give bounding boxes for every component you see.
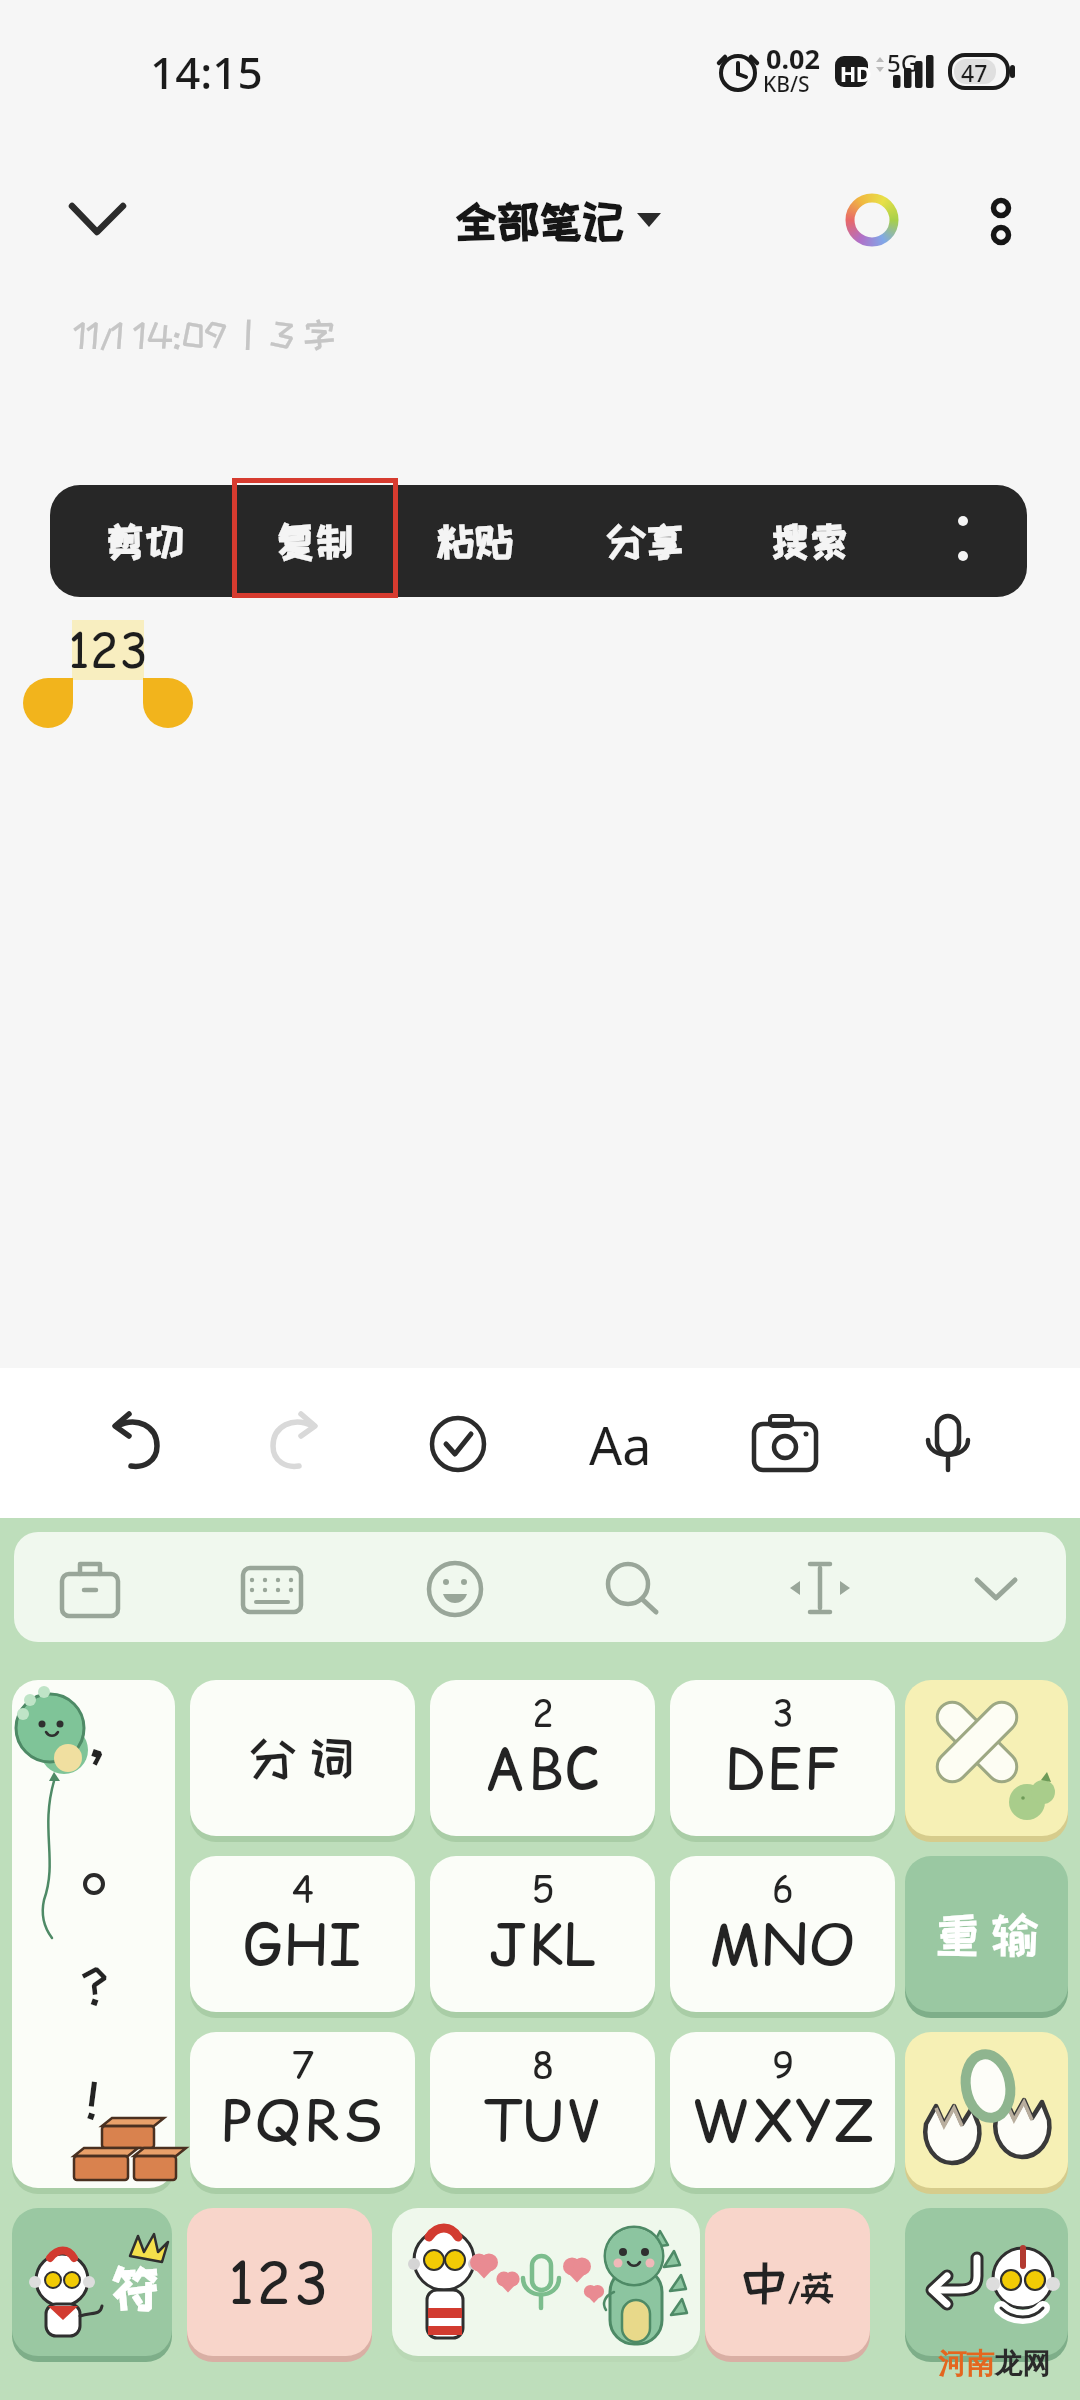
staticText: KB/S: [763, 70, 810, 99]
staticText: 分享: [607, 520, 685, 562]
staticText: 3: [772, 1688, 794, 1738]
staticText: ABC: [484, 1728, 601, 1809]
staticText: 2: [532, 1688, 554, 1738]
staticText: 中/英: [740, 2256, 835, 2308]
staticText: 复制: [276, 520, 354, 562]
staticText: 123: [68, 616, 149, 683]
staticText: 分 词: [250, 1733, 355, 1783]
staticText: 11/1 14:09 | 3 字: [74, 316, 336, 352]
staticText: 8: [532, 2040, 554, 2090]
staticText: 6: [772, 1864, 794, 1914]
staticText: Aa: [589, 1409, 652, 1480]
staticText: DEF: [724, 1728, 841, 1809]
staticText: 搜索: [771, 520, 849, 562]
staticText: JKL: [488, 1904, 597, 1985]
staticText: 全部笔记: [455, 198, 625, 244]
staticText: 47: [961, 57, 988, 88]
staticText: 7: [292, 2040, 314, 2090]
staticText: 龙网: [994, 2346, 1050, 2381]
staticText: TUV: [481, 2080, 604, 2161]
staticText: WXYZ: [691, 2080, 875, 2161]
staticText: 符: [110, 2260, 160, 2314]
staticText: 重 输: [934, 1909, 1039, 1959]
staticText: MNO: [709, 1904, 856, 1985]
staticText: GHI: [243, 1904, 362, 1985]
staticText: ，: [70, 1707, 124, 1765]
staticText: 5G: [887, 46, 919, 79]
staticText: 5: [532, 1864, 554, 1914]
staticText: 剪切: [106, 520, 184, 562]
staticText: 0.02: [766, 40, 820, 77]
staticText: 河南: [938, 2346, 994, 2381]
staticText: 14:15: [150, 42, 263, 102]
staticText: PQRS: [222, 2080, 384, 2161]
staticText: ？: [72, 1962, 117, 2010]
staticText: 4: [292, 1864, 314, 1914]
staticText: ！: [70, 2076, 115, 2124]
staticText: 9: [772, 2040, 794, 2090]
staticText: HD: [840, 60, 872, 89]
staticText: 粘贴: [436, 520, 514, 562]
staticText: 123: [228, 2242, 331, 2323]
